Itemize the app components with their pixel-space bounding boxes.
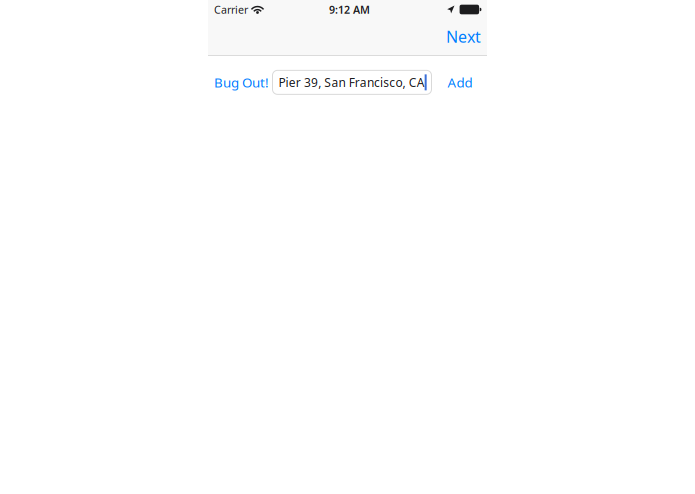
button[interactable]: Bug Out!: [214, 66, 272, 98]
staticText: Pier 39, San Francisco, CA: [278, 74, 425, 90]
button[interactable]: Next: [436, 21, 487, 54]
staticText: Next: [446, 26, 481, 47]
staticText: Add: [447, 73, 472, 91]
button[interactable]: Add: [431, 66, 472, 98]
staticText: 9:12 AM: [329, 2, 370, 17]
button[interactable]: Pier 39, San Francisco, CA: [272, 70, 431, 94]
staticText: Carrier: [214, 2, 248, 17]
staticText: Bug Out!: [214, 73, 269, 91]
